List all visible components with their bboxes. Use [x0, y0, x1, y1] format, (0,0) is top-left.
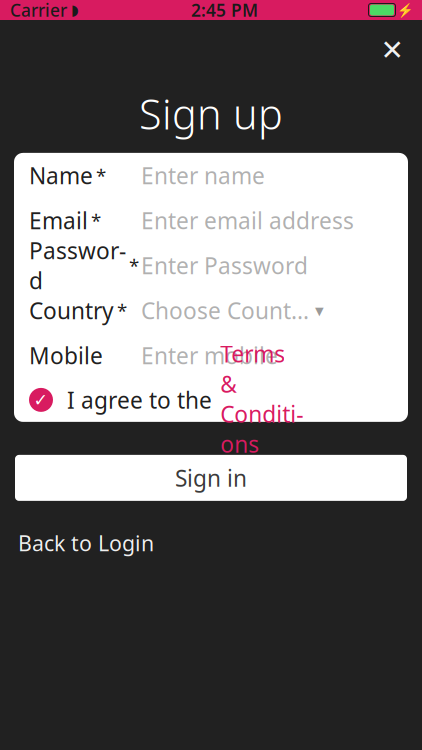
staticText: ✕ — [380, 34, 403, 66]
staticText: I agree to the — [67, 385, 218, 415]
staticText: Carrier — [10, 0, 67, 21]
staticText: 2:45 PM — [191, 0, 258, 21]
staticText: ⚡ — [397, 2, 414, 18]
staticText: Mobile — [29, 340, 103, 370]
staticText: Back to Login — [18, 529, 154, 557]
staticText: Terms & Conditions — [220, 339, 303, 459]
staticText: Choose Count... — [141, 295, 309, 325]
button[interactable]: Close — [370, 28, 414, 72]
staticText: * — [91, 208, 101, 233]
staticText: ◗ — [71, 2, 79, 18]
staticText: * — [117, 298, 127, 323]
staticText: Sign up — [139, 86, 283, 141]
button[interactable]: ✓ — [29, 378, 393, 422]
staticText: Sign in — [175, 463, 247, 493]
button[interactable]: Sign in — [15, 455, 407, 501]
staticText: Password — [29, 235, 126, 295]
staticText: Name — [29, 160, 93, 190]
staticText: Enter Password — [141, 250, 308, 280]
staticText: Enter email address — [141, 205, 354, 235]
button[interactable]: Back to Login — [18, 519, 154, 567]
staticText: ▾ — [315, 301, 324, 320]
staticText: ✓ — [33, 390, 48, 410]
staticText: Enter name — [141, 160, 265, 190]
staticText: Enter mobile — [141, 340, 278, 370]
staticText: * — [129, 253, 139, 278]
staticText: Email — [29, 205, 88, 235]
staticText: Country — [29, 295, 114, 325]
staticText: * — [96, 163, 106, 188]
